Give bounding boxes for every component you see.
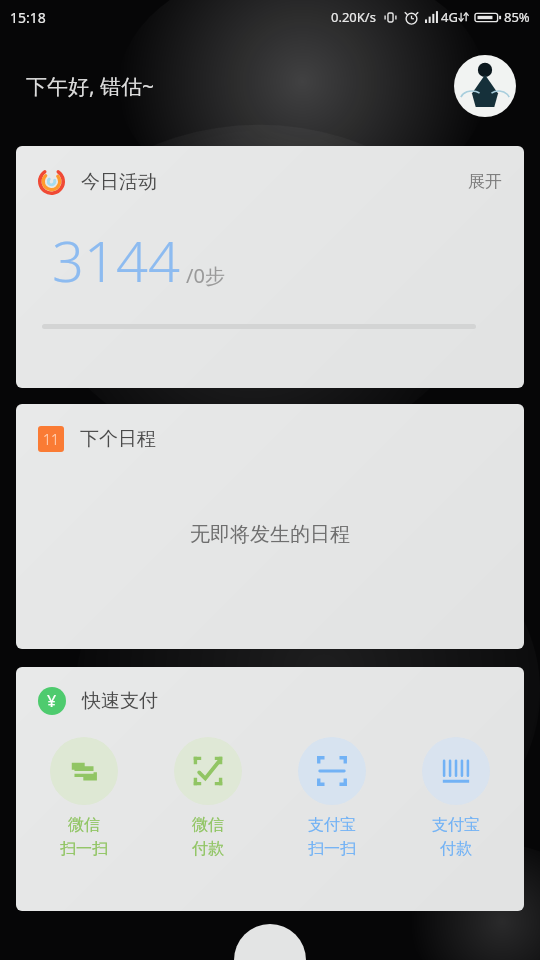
staticText: 支付宝 [308, 815, 356, 835]
staticText: 85% [504, 8, 530, 26]
button[interactable]: Home [234, 924, 306, 960]
staticText: 下个日程 [80, 427, 156, 451]
staticText: 扫一扫 [60, 839, 108, 859]
button[interactable]: Profile avatar [454, 55, 516, 117]
staticText: 展开 [468, 171, 502, 192]
staticText: 付款 [192, 839, 224, 859]
staticText: 微信 [192, 815, 224, 835]
staticText: 无即将发生的日程 [190, 522, 350, 547]
staticText: 3144 [52, 222, 180, 298]
button[interactable]: 今日活动 [16, 146, 524, 388]
staticText: 微信 [68, 815, 100, 835]
staticText: 支付宝 [432, 815, 480, 835]
button[interactable]: 微信 [146, 737, 270, 859]
button[interactable]: 11 [16, 404, 524, 649]
staticText: 付款 [440, 839, 472, 859]
button[interactable]: ¥ [16, 667, 524, 911]
staticText: 4G [441, 8, 458, 26]
staticText: /0步 [186, 262, 225, 289]
button[interactable]: 支付宝 [270, 737, 394, 859]
staticText: 0.20K/s [331, 8, 376, 26]
staticText: 扫一扫 [308, 839, 356, 859]
staticText: 11 [43, 430, 59, 449]
button[interactable]: 展开 [468, 171, 502, 192]
button[interactable]: 下午好, 错估~ [26, 72, 155, 101]
button[interactable]: 支付宝 [394, 737, 518, 859]
button[interactable]: 微信 [22, 737, 146, 859]
staticText: 快速支付 [82, 689, 158, 713]
staticText: 今日活动 [81, 170, 157, 194]
staticText: 15:18 [10, 8, 46, 27]
staticText: ¥ [47, 690, 57, 712]
